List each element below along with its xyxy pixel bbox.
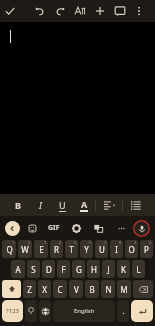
staticText: V [74, 284, 79, 295]
button[interactable]: O [125, 240, 138, 258]
button[interactable]: Y [80, 240, 93, 258]
staticText: J [107, 264, 110, 275]
staticText: English [74, 307, 95, 315]
button[interactable]: U [95, 240, 108, 258]
button[interactable]: Expand toolbar [5, 221, 20, 236]
button[interactable]: Translate [88, 216, 108, 240]
staticText: A [15, 264, 21, 275]
button[interactable]: Stickers [22, 216, 42, 240]
button[interactable]: Insert [90, 0, 110, 22]
button[interactable]: Comment [110, 0, 130, 22]
staticText: O [128, 244, 135, 255]
button[interactable]: R [50, 240, 63, 258]
staticText: T [69, 244, 74, 255]
button[interactable]: Undo [30, 0, 50, 22]
button[interactable]: K [117, 260, 130, 278]
staticText: K [121, 264, 126, 275]
button[interactable]: Alignment [96, 194, 122, 216]
staticText: 1 [12, 240, 15, 245]
staticText: I [39, 199, 42, 211]
staticText: 6 [89, 240, 92, 245]
staticText: 2 [28, 240, 31, 245]
staticText: G [76, 264, 82, 275]
staticText: C [57, 284, 63, 295]
staticText: 7 [104, 240, 107, 245]
staticText: L [136, 264, 141, 275]
button[interactable]: Q [2, 240, 16, 258]
staticText: N [105, 284, 112, 295]
button[interactable]: GIF [44, 216, 64, 240]
button[interactable]: X [38, 280, 51, 298]
button[interactable]: Enter [131, 300, 153, 322]
button[interactable]: English [53, 300, 115, 322]
button[interactable]: A [11, 260, 25, 278]
staticText: B [89, 284, 95, 295]
staticText: S [31, 264, 36, 275]
button[interactable]: J [102, 260, 115, 278]
staticText: H [91, 264, 97, 275]
button[interactable]: Key [117, 300, 129, 322]
button[interactable]: More [111, 216, 131, 240]
button[interactable]: ?123 [2, 300, 23, 322]
button[interactable]: Key [2, 280, 21, 298]
staticText: P [144, 244, 149, 255]
staticText: I [115, 244, 118, 255]
button[interactable]: Key [39, 300, 51, 322]
button[interactable]: I [29, 194, 51, 216]
button[interactable]: Z [23, 280, 36, 298]
staticText: U [99, 244, 105, 255]
button[interactable]: H [87, 260, 100, 278]
button[interactable]: Key [133, 280, 153, 298]
staticText: U [59, 199, 66, 211]
staticText: M [120, 284, 128, 295]
staticText: GIF [48, 223, 60, 233]
staticText: A [81, 198, 88, 210]
button[interactable]: B [6, 194, 29, 216]
button[interactable]: C [53, 280, 67, 298]
button[interactable]: T [65, 240, 78, 258]
staticText: 8 [119, 240, 122, 245]
button[interactable]: S [27, 260, 40, 278]
button[interactable]: Voice input [133, 220, 150, 237]
staticText: 4 [59, 240, 62, 245]
button[interactable]: D [42, 260, 55, 278]
button[interactable]: Text format [70, 0, 90, 22]
staticText: Z [27, 284, 32, 295]
button[interactable]: P [140, 240, 153, 258]
button[interactable]: Settings [66, 216, 86, 240]
staticText: F [61, 264, 66, 275]
staticText: R [54, 244, 59, 255]
staticText: Y [84, 244, 89, 255]
staticText: 9 [134, 240, 137, 245]
button[interactable]: G [72, 260, 85, 278]
button[interactable]: Key [25, 300, 37, 322]
button[interactable]: L [132, 260, 145, 278]
button[interactable]: E [34, 240, 48, 258]
button[interactable]: List [123, 194, 149, 216]
staticText: W [21, 244, 29, 255]
button[interactable]: B [85, 280, 99, 298]
staticText: D [46, 264, 52, 275]
staticText: Q [6, 244, 13, 255]
staticText: E [39, 244, 44, 255]
button[interactable]: F [57, 260, 70, 278]
staticText: B [15, 199, 21, 211]
button[interactable]: M [117, 280, 131, 298]
button[interactable]: W [18, 240, 32, 258]
button[interactable]: N [101, 280, 115, 298]
button[interactable]: I [110, 240, 123, 258]
button[interactable]: Done [0, 0, 20, 22]
button[interactable]: More options [130, 0, 148, 22]
staticText: X [42, 284, 47, 295]
staticText: 3 [44, 240, 47, 245]
button[interactable]: V [69, 280, 83, 298]
button[interactable]: Redo [50, 0, 70, 22]
button[interactable]: A [73, 194, 95, 216]
staticText: 5 [74, 240, 77, 245]
staticText: ?123 [6, 307, 19, 315]
staticText: 0 [149, 240, 152, 245]
button[interactable]: U [51, 194, 73, 216]
